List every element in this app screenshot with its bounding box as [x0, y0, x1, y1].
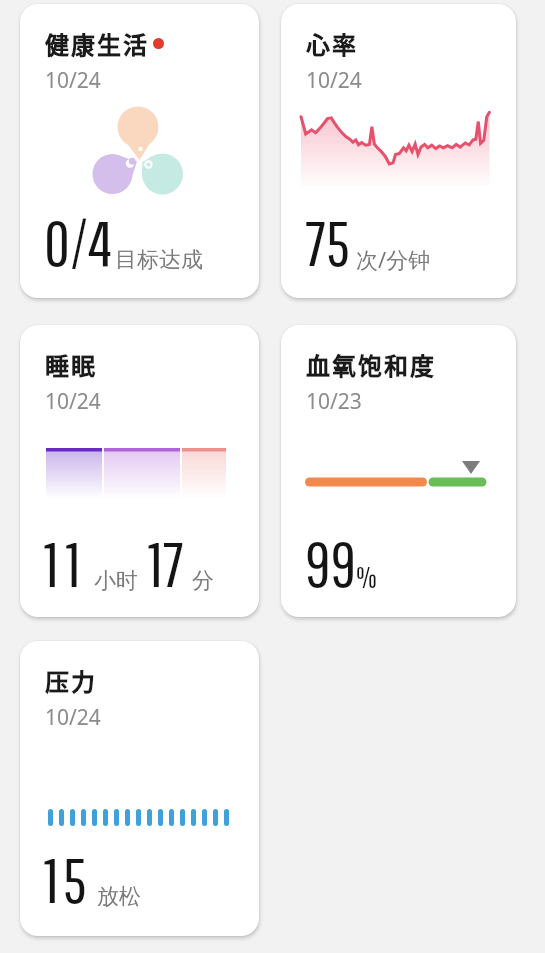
staticText: 11 — [44, 527, 88, 600]
button[interactable]: 健康生活 — [20, 4, 259, 298]
staticText: 10/24 — [45, 387, 101, 416]
button[interactable]: 心率 — [281, 4, 516, 298]
staticText: 10/24 — [45, 66, 101, 95]
staticText: 小时 — [94, 567, 138, 595]
staticText: 次/分钟 — [356, 244, 431, 274]
button[interactable]: 血氧饱和度 — [281, 325, 516, 617]
staticText: 睡眠 — [45, 347, 97, 382]
staticText: 75 — [305, 206, 350, 279]
staticText: 15 — [44, 843, 91, 916]
staticText: 0/4 — [44, 206, 113, 279]
staticText: 17 — [148, 527, 184, 600]
staticText: 血氧饱和度 — [306, 347, 436, 382]
button[interactable]: 睡眠 — [20, 325, 259, 617]
staticText: 心率 — [306, 26, 358, 61]
staticText: 分 — [192, 567, 214, 595]
button[interactable]: 压力 — [20, 641, 259, 936]
staticText: 10/24 — [306, 66, 362, 95]
staticText: 放松 — [97, 883, 141, 911]
staticText: 健康生活 — [45, 26, 149, 61]
staticText: 目标达成 — [115, 246, 203, 274]
staticText: 10/23 — [306, 387, 362, 416]
staticText: 压力 — [45, 663, 97, 698]
staticText: 10/24 — [45, 703, 101, 732]
staticText: 99 — [305, 527, 356, 600]
staticText: % — [356, 559, 377, 594]
